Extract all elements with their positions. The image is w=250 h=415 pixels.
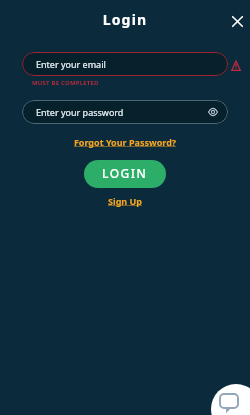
staticText: Enter your password [36,106,124,118]
button[interactable] [227,11,247,31]
button[interactable]: LOGIN [84,160,166,188]
button[interactable] [211,384,250,415]
staticText: Login [0,10,250,29]
button[interactable]: Forgot Your Password? [0,136,250,148]
button[interactable]: Enter your password [22,100,228,124]
staticText: Enter your email [36,58,106,70]
button[interactable]: Sign Up [0,195,250,207]
staticText: MUST BE COMPLETED [32,79,99,87]
button[interactable]: Enter your email [22,52,228,76]
staticText: LOGIN [102,165,148,181]
